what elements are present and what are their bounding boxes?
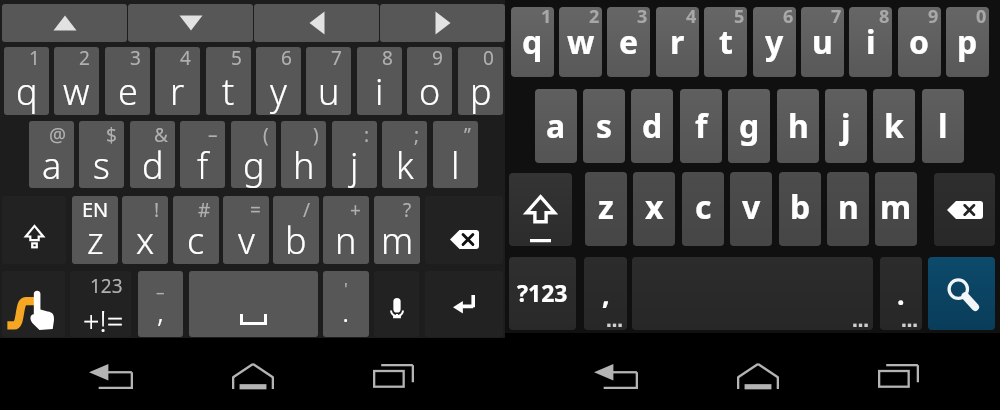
button[interactable]: /	[273, 196, 319, 264]
button[interactable]: Backspace	[425, 196, 503, 264]
button[interactable]: EN	[72, 196, 118, 264]
button[interactable]: 6	[256, 47, 301, 115]
button[interactable]: :	[332, 121, 377, 188]
button[interactable]: Space	[189, 271, 318, 337]
button[interactable]: z	[585, 172, 627, 246]
button[interactable]: Back	[594, 364, 638, 389]
button[interactable]: Down	[128, 4, 253, 42]
staticText: r	[670, 20, 685, 64]
button[interactable]: l	[922, 89, 964, 163]
button[interactable]: 0	[458, 47, 503, 115]
staticText: &	[154, 122, 168, 148]
button[interactable]: Backspace	[934, 173, 995, 246]
staticText: 4	[686, 7, 697, 29]
staticText: t	[719, 20, 733, 64]
button[interactable]: h	[777, 89, 819, 163]
button[interactable]: 8	[849, 7, 892, 77]
button[interactable]: ,	[584, 257, 627, 330]
button[interactable]: 8	[357, 47, 402, 115]
button[interactable]: Gesture typing	[2, 271, 65, 337]
button[interactable]: Enter	[425, 271, 503, 337]
button[interactable]: (	[231, 121, 276, 188]
button[interactable]: b	[779, 172, 821, 246]
button[interactable]: 5	[704, 7, 747, 77]
staticText: z	[87, 216, 104, 264]
button[interactable]: Backspace	[934, 173, 995, 246]
button[interactable]: c	[682, 172, 724, 246]
button[interactable]: Shift	[2, 196, 66, 264]
button[interactable]: 9	[407, 47, 452, 115]
button[interactable]: Search	[928, 257, 995, 330]
button[interactable]: 3	[607, 7, 650, 77]
button[interactable]: Voice input	[374, 271, 419, 337]
button[interactable]: #	[173, 196, 219, 264]
button[interactable]: ?	[374, 196, 420, 264]
button[interactable]: g	[728, 89, 770, 163]
button[interactable]: Space	[189, 271, 318, 337]
button[interactable]: '	[323, 271, 369, 337]
button[interactable]: Shift	[509, 173, 572, 246]
button[interactable]: 123	[70, 271, 131, 337]
button[interactable]: 3	[105, 47, 150, 115]
button[interactable]: 2	[559, 7, 602, 77]
button[interactable]: +	[323, 196, 369, 264]
button[interactable]: @	[29, 121, 74, 188]
button[interactable]: $	[79, 121, 124, 188]
button[interactable]: j	[825, 89, 867, 163]
button[interactable]: 7	[306, 47, 351, 115]
button[interactable]: &	[130, 121, 175, 188]
staticText: u	[812, 20, 833, 64]
button[interactable]: n	[827, 172, 869, 246]
staticText: EN	[82, 196, 109, 223]
button[interactable]: Up	[2, 4, 127, 42]
button[interactable]: 6	[753, 7, 796, 77]
button[interactable]: Shift	[2, 196, 66, 264]
button[interactable]: s	[583, 89, 625, 163]
button[interactable]: ;	[382, 121, 427, 188]
button[interactable]: Backspace	[425, 196, 503, 264]
button[interactable]: Shift	[509, 173, 572, 246]
button[interactable]: ?123	[509, 257, 576, 330]
button[interactable]: m	[875, 172, 917, 246]
button[interactable]: Recent apps	[373, 364, 414, 389]
button[interactable]: 4	[155, 47, 200, 115]
button[interactable]: Home	[232, 364, 274, 389]
staticText: q	[16, 67, 38, 115]
button[interactable]: =	[223, 196, 269, 264]
button[interactable]: Gesture typing	[2, 271, 65, 337]
button[interactable]: Space	[632, 257, 873, 330]
staticText: b	[285, 216, 307, 264]
button[interactable]: 5	[206, 47, 251, 115]
button[interactable]: Home	[737, 364, 779, 389]
button[interactable]: k	[873, 89, 915, 163]
button[interactable]: Space	[632, 257, 873, 330]
button[interactable]: 4	[656, 7, 699, 77]
button[interactable]: –	[180, 121, 225, 188]
button[interactable]: 0	[946, 7, 989, 77]
button[interactable]: Right	[380, 4, 505, 42]
button[interactable]: .	[880, 257, 922, 330]
button[interactable]: Voice input	[374, 271, 419, 337]
button[interactable]: Enter	[425, 271, 503, 337]
button[interactable]: Recent apps	[878, 364, 919, 389]
button[interactable]: Left	[254, 4, 379, 42]
button[interactable]: )	[281, 121, 326, 188]
button[interactable]: 9	[898, 7, 941, 77]
staticText: m	[381, 216, 414, 264]
button[interactable]: x	[633, 172, 675, 246]
button[interactable]: f	[680, 89, 722, 163]
button[interactable]: Search	[928, 257, 995, 330]
button[interactable]: 1	[4, 47, 49, 115]
button[interactable]: 7	[801, 7, 844, 77]
button[interactable]: d	[631, 89, 673, 163]
button[interactable]: Back	[89, 364, 133, 389]
staticText: w	[63, 67, 90, 115]
button[interactable]: !	[122, 196, 168, 264]
button[interactable]: 1	[511, 7, 554, 77]
staticText: '	[344, 277, 348, 300]
button[interactable]: 2	[54, 47, 99, 115]
button[interactable]: v	[730, 172, 772, 246]
button[interactable]: a	[535, 89, 577, 163]
button[interactable]: –	[138, 271, 183, 337]
button[interactable]: ”	[433, 121, 478, 188]
